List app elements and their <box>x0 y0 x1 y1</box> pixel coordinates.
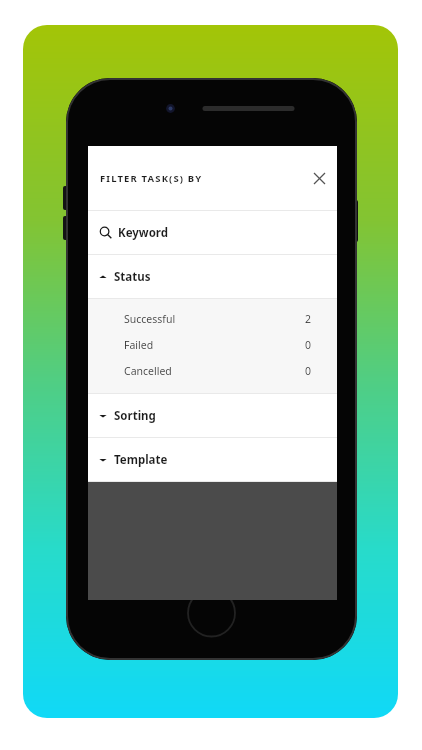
staticText: 0 <box>305 364 312 378</box>
staticText: Template <box>114 452 168 468</box>
staticText: Successful <box>124 312 305 326</box>
staticText: FILTER TASK(S) BY <box>100 172 301 185</box>
button[interactable]: Cancelled <box>88 358 337 384</box>
staticText: Failed <box>124 338 305 352</box>
staticText: 2 <box>305 312 312 326</box>
staticText: Keyword <box>118 225 169 241</box>
staticText: Sorting <box>114 408 156 424</box>
staticText: Status <box>114 269 151 285</box>
button[interactable]: Successful <box>88 306 337 332</box>
button[interactable]: Keyword <box>88 211 337 254</box>
button[interactable]: Failed <box>88 332 337 358</box>
button[interactable]: Status <box>88 255 337 298</box>
staticText: 0 <box>305 338 312 352</box>
button[interactable]: FILTER TASK(S) BY <box>88 146 337 210</box>
button[interactable]: Template <box>88 438 337 481</box>
button[interactable]: Sorting <box>88 394 337 437</box>
button[interactable]: Close filter <box>301 160 337 196</box>
staticText: Cancelled <box>124 364 305 378</box>
